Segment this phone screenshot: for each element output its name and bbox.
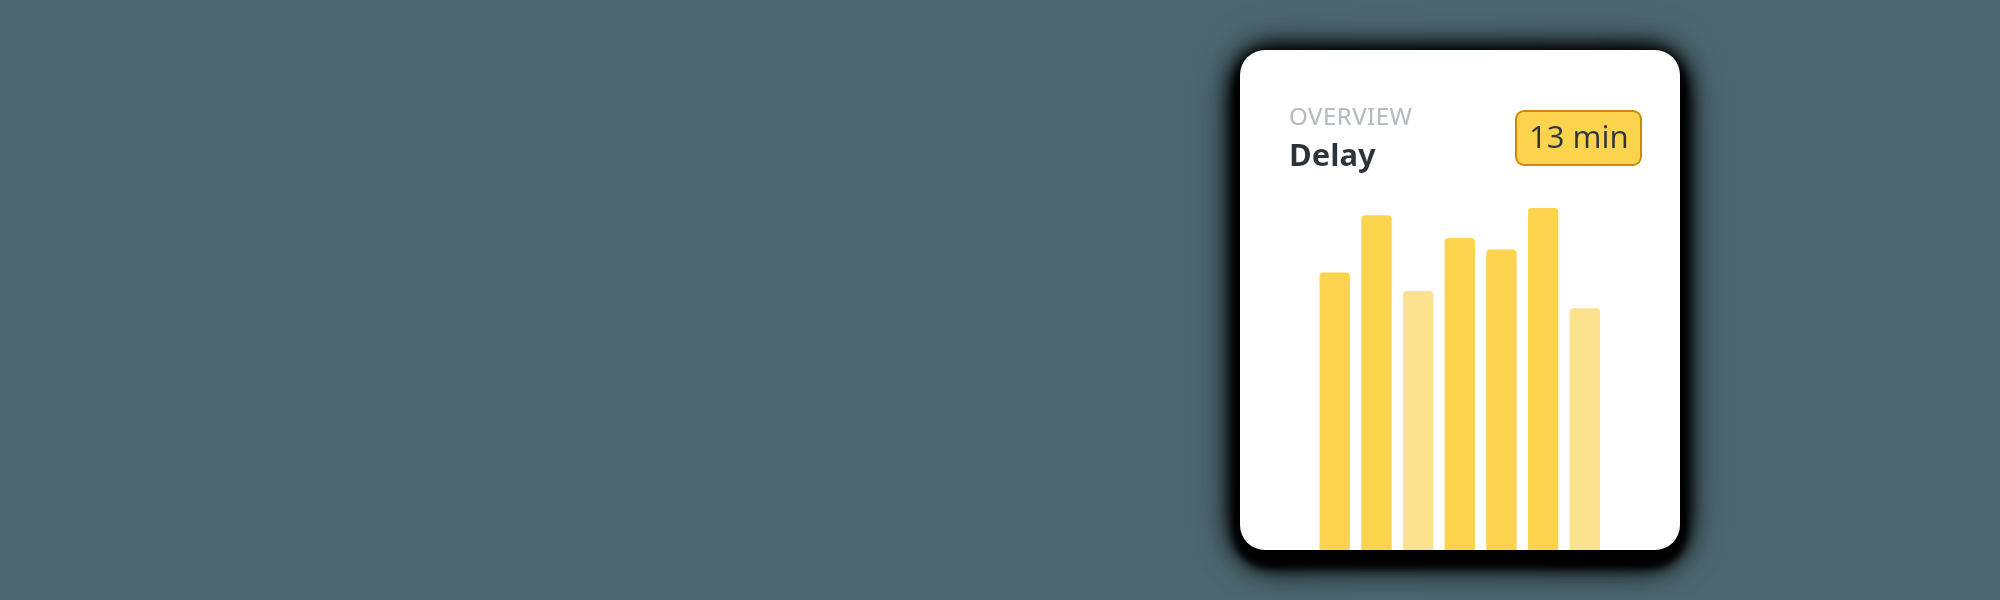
- button[interactable]: Delay bar chart: [1240, 50, 1680, 550]
- staticText: Delay: [1289, 133, 1376, 175]
- other: Delay bar chart: [1240, 50, 1680, 550]
- staticText: OVERVIEW: [1289, 99, 1413, 132]
- staticText: 13 min: [1529, 115, 1629, 157]
- button[interactable]: 13 min: [1515, 110, 1642, 166]
